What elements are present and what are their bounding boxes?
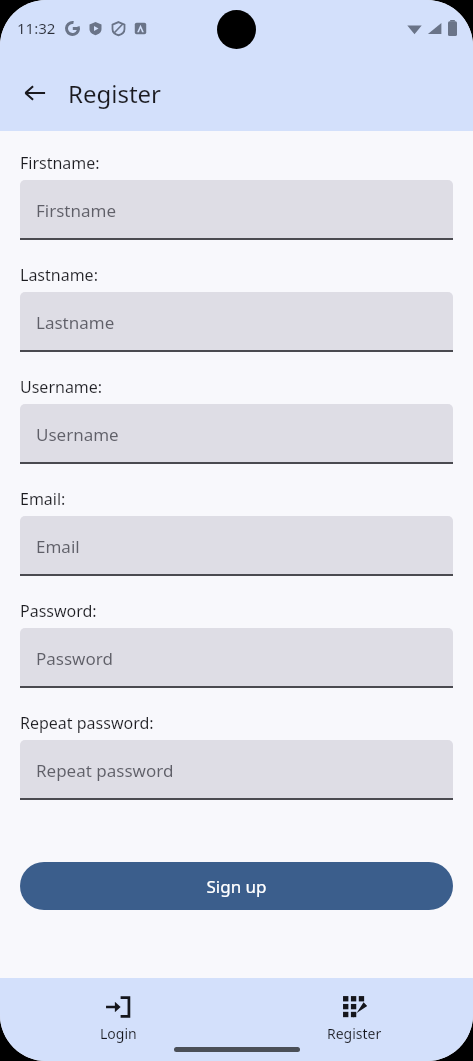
staticText: Password: [36, 647, 113, 670]
staticText: Username: [36, 423, 119, 446]
button[interactable]: Login: [0, 978, 236, 1061]
staticText: Firstname: [36, 199, 117, 222]
staticText: Sign up: [206, 875, 267, 898]
staticText: Register: [68, 77, 162, 110]
staticText: Firstname:: [20, 152, 100, 174]
button[interactable]: Lastname: [20, 292, 453, 352]
staticText: Repeat password: [36, 759, 174, 782]
staticText: Repeat password:: [20, 712, 154, 734]
button[interactable]: Firstname: [20, 180, 453, 240]
staticText: Username:: [20, 376, 103, 398]
button[interactable]: Repeat password: [20, 740, 453, 800]
button[interactable]: Register: [236, 978, 473, 1061]
staticText: Lastname: [36, 311, 115, 334]
staticText: Login: [100, 1024, 137, 1043]
staticText: Password:: [20, 600, 97, 622]
staticText: Lastname:: [20, 264, 98, 286]
staticText: Email: [36, 535, 80, 558]
button[interactable]: Email: [20, 516, 453, 576]
button[interactable]: Back: [14, 72, 56, 114]
button[interactable]: Sign up: [20, 862, 453, 910]
staticText: Email:: [20, 488, 66, 510]
staticText: 11:32: [17, 18, 56, 38]
staticText: Register: [327, 1024, 382, 1043]
button[interactable]: Password: [20, 628, 453, 688]
button[interactable]: Username: [20, 404, 453, 464]
